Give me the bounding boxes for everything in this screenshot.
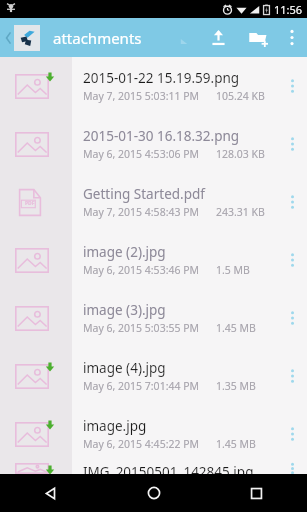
button[interactable]: New folder (237, 18, 279, 57)
staticText: IMG_20150501_142845.jpg (83, 463, 254, 474)
button[interactable]: Item options (277, 347, 307, 405)
staticText: image (4).jpg (83, 359, 166, 377)
button[interactable]: Item options (277, 231, 307, 289)
button[interactable]: Item options (277, 57, 307, 115)
staticText: May 6, 2015 4:53:46 PM (83, 263, 200, 277)
staticText: 1.45 MB (216, 321, 256, 335)
button[interactable]: Item options (277, 173, 307, 231)
button[interactable]: image.jpg (0, 405, 307, 463)
staticText: May 6, 2015 4:53:06 PM (83, 147, 200, 161)
button[interactable]: Item options (277, 463, 307, 474)
staticText: image (2).jpg (83, 243, 166, 261)
button[interactable]: Item options (277, 405, 307, 463)
staticText: May 6, 2015 7:01:44 PM (83, 379, 200, 393)
button[interactable]: Back (4, 28, 13, 48)
staticText: 105.24 KB (216, 89, 265, 103)
staticText: 1.45 MB (216, 437, 256, 451)
staticText: 1.5 MB (216, 263, 250, 277)
button[interactable]: IMG_20150501_142845.jpg (0, 463, 307, 474)
button[interactable]: image (3).jpg (0, 289, 307, 347)
button[interactable]: More options (279, 18, 305, 57)
button[interactable]: App icon (14, 25, 40, 51)
staticText: 2015-01-22 15.19.59.png (83, 69, 240, 87)
staticText: PDF (25, 200, 35, 207)
staticText: Getting Started.pdf (83, 185, 205, 203)
staticText: 2015-01-30 16.18.32.png (83, 127, 240, 145)
staticText: 1.35 MB (216, 379, 256, 393)
staticText: May 7, 2015 4:58:43 PM (83, 205, 200, 219)
button[interactable]: Item options (277, 115, 307, 173)
button[interactable]: 2015-01-30 16.18.32.png (0, 115, 307, 173)
staticText: image.jpg (83, 417, 147, 435)
button[interactable]: PDF (0, 173, 307, 231)
button[interactable]: Home (103, 474, 205, 512)
button[interactable]: image (4).jpg (0, 347, 307, 405)
staticText: attachments (53, 28, 142, 48)
staticText: 128.03 KB (216, 147, 265, 161)
button[interactable]: Upload (199, 18, 237, 57)
button[interactable]: Recents (205, 474, 307, 512)
staticText: 11:56 (274, 2, 303, 17)
staticText: May 6, 2015 5:03:55 PM (83, 321, 200, 335)
button[interactable]: Back (0, 474, 103, 512)
button[interactable]: image (2).jpg (0, 231, 307, 289)
staticText: May 6, 2015 4:45:22 PM (83, 437, 200, 451)
staticText: image (3).jpg (83, 301, 166, 319)
staticText: 243.31 KB (216, 205, 265, 219)
staticText: May 7, 2015 5:03:11 PM (83, 89, 200, 103)
button[interactable]: Item options (277, 289, 307, 347)
button[interactable]: 2015-01-22 15.19.59.png (0, 57, 307, 115)
